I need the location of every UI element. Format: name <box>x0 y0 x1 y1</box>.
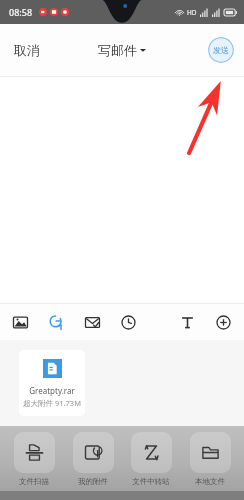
button[interactable]: Greatpty.rar <box>19 350 85 416</box>
button[interactable]: 文件中转站 <box>125 432 177 486</box>
staticText: 取消 <box>14 42 40 58</box>
button[interactable]: 图片 <box>7 309 33 335</box>
button[interactable]: 取消 <box>0 32 54 68</box>
button[interactable]: 本地文件 <box>184 432 236 486</box>
staticText: 文件中转站 <box>132 477 170 486</box>
button[interactable]: 定时 <box>115 309 141 335</box>
staticText: 文件扫描 <box>19 477 49 486</box>
button[interactable]: 文本格式 <box>174 309 200 335</box>
staticText: 发送 <box>213 45 229 55</box>
staticText: Greatpty.rar <box>29 385 75 396</box>
button[interactable]: 我的附件 <box>67 432 119 486</box>
staticText: 08:58 <box>9 6 33 18</box>
button[interactable]: 附件 <box>43 309 69 335</box>
button[interactable]: 更多 <box>210 309 236 335</box>
staticText: 我的附件 <box>78 477 108 486</box>
button[interactable]: 邮件 <box>79 309 105 335</box>
staticText: 超大附件 91.73M <box>23 398 81 408</box>
staticText: 写邮件 <box>98 42 137 58</box>
button[interactable]: 写邮件 <box>88 34 156 66</box>
staticText: 本地文件 <box>195 477 225 486</box>
button[interactable]: 发送 <box>208 37 234 63</box>
staticText: HD <box>187 8 197 17</box>
button[interactable]: 文件扫描 <box>8 432 60 486</box>
